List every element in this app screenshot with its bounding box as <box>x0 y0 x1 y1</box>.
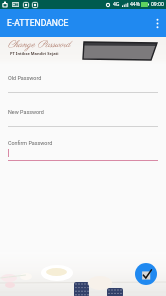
button[interactable]: Old Password <box>0 59 166 93</box>
staticText: Old Password <box>8 75 42 81</box>
staticText: Change Password <box>8 38 71 51</box>
staticText: 4G <box>113 1 120 8</box>
button[interactable]: Save <box>135 263 157 285</box>
staticText: New Password <box>8 109 44 115</box>
button[interactable]: More options <box>148 9 166 37</box>
button[interactable]: Confirm Password <box>0 127 166 161</box>
staticText: Confirm Password <box>8 140 53 146</box>
staticText: PT Intikse Mandiri Sejati <box>10 51 59 56</box>
staticText: 09:00 <box>151 1 164 8</box>
staticText: E-ATTENDANCE <box>7 18 69 28</box>
staticText: 44% <box>130 1 140 8</box>
button[interactable]: New Password <box>0 93 166 127</box>
